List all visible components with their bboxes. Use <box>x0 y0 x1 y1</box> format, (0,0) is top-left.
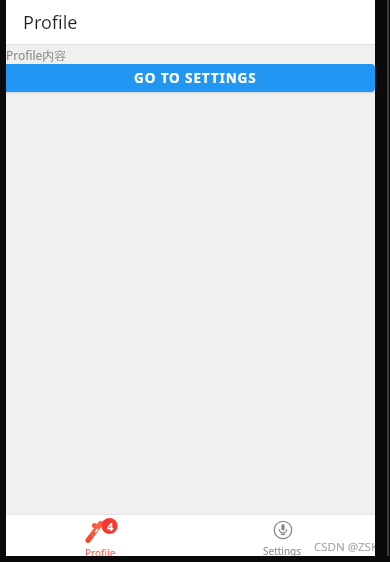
staticText: GO TO SETTINGS <box>134 69 257 87</box>
staticText: Profile内容 <box>6 47 67 63</box>
staticText: Profile <box>85 546 116 556</box>
staticText: 4 <box>107 519 114 534</box>
staticText: Profile <box>23 10 78 35</box>
staticText: Settings <box>263 544 302 556</box>
staticText: CSDN @ZSK6 <box>314 539 375 555</box>
